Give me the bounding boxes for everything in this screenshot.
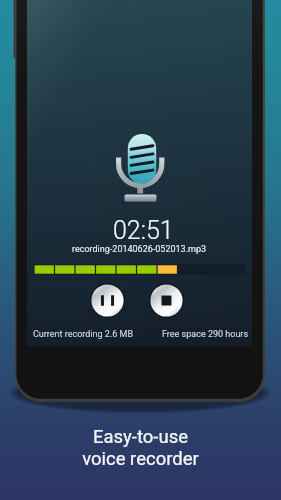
button[interactable]: Pause xyxy=(90,283,125,318)
staticText: Free space 290 hours xyxy=(162,329,249,340)
staticText: recording-20140626-052013.mp3 xyxy=(72,244,207,255)
staticText: Easy-to-use voice recorder xyxy=(82,426,199,470)
staticText: Current recording 2.6 MB xyxy=(33,329,134,340)
button[interactable]: Recording level xyxy=(34,264,246,275)
staticText: 02:51 xyxy=(113,216,174,245)
button[interactable]: Stop xyxy=(149,283,184,318)
